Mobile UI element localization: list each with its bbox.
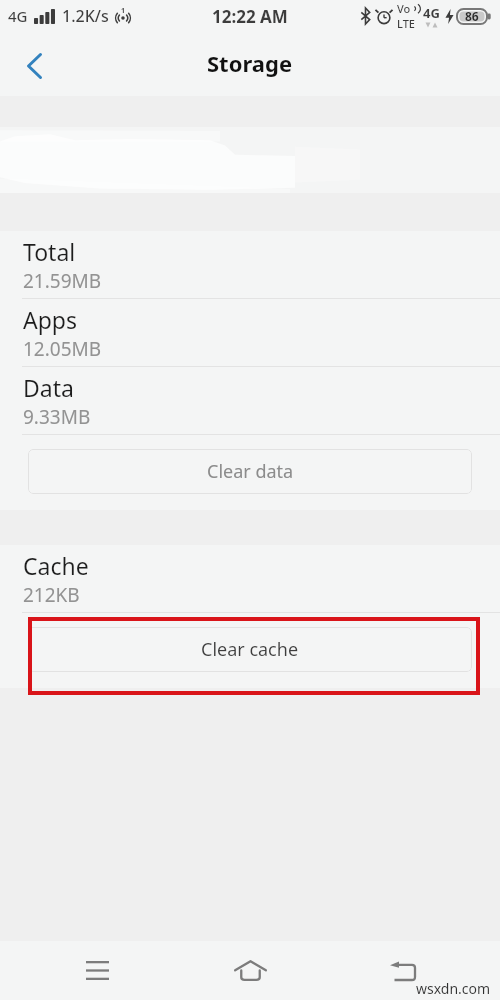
- staticText: Cache: [23, 550, 89, 581]
- button[interactable]: Recent apps: [50, 941, 145, 1000]
- staticText: 212KB: [23, 582, 80, 608]
- staticText: 4G: [8, 6, 28, 26]
- staticText: Total: [23, 236, 76, 267]
- staticText: Apps: [23, 304, 78, 335]
- staticText: 4G: [423, 4, 440, 22]
- staticText: 12:22 AM: [212, 5, 288, 28]
- button[interactable]: Back: [355, 941, 450, 1000]
- staticText: 9.33MB: [23, 404, 91, 430]
- staticText: wsxdn.com: [416, 979, 491, 998]
- staticText: Storage: [207, 48, 293, 78]
- staticText: Clear cache: [201, 637, 299, 662]
- button[interactable]: Clear data: [28, 449, 472, 494]
- button[interactable]: Clear cache: [28, 627, 472, 672]
- staticText: Clear data: [207, 459, 294, 484]
- staticText: 1.2K/s: [62, 5, 109, 27]
- staticText: Data: [23, 372, 74, 403]
- staticText: 1: [121, 6, 126, 16]
- staticText: 86: [465, 8, 479, 24]
- staticText: Vo: [397, 1, 411, 16]
- staticText: LTE: [397, 16, 415, 31]
- button[interactable]: Home: [203, 941, 298, 1000]
- staticText: 12.05MB: [23, 336, 102, 362]
- staticText: 21.59MB: [23, 268, 102, 294]
- button[interactable]: Back: [10, 42, 58, 90]
